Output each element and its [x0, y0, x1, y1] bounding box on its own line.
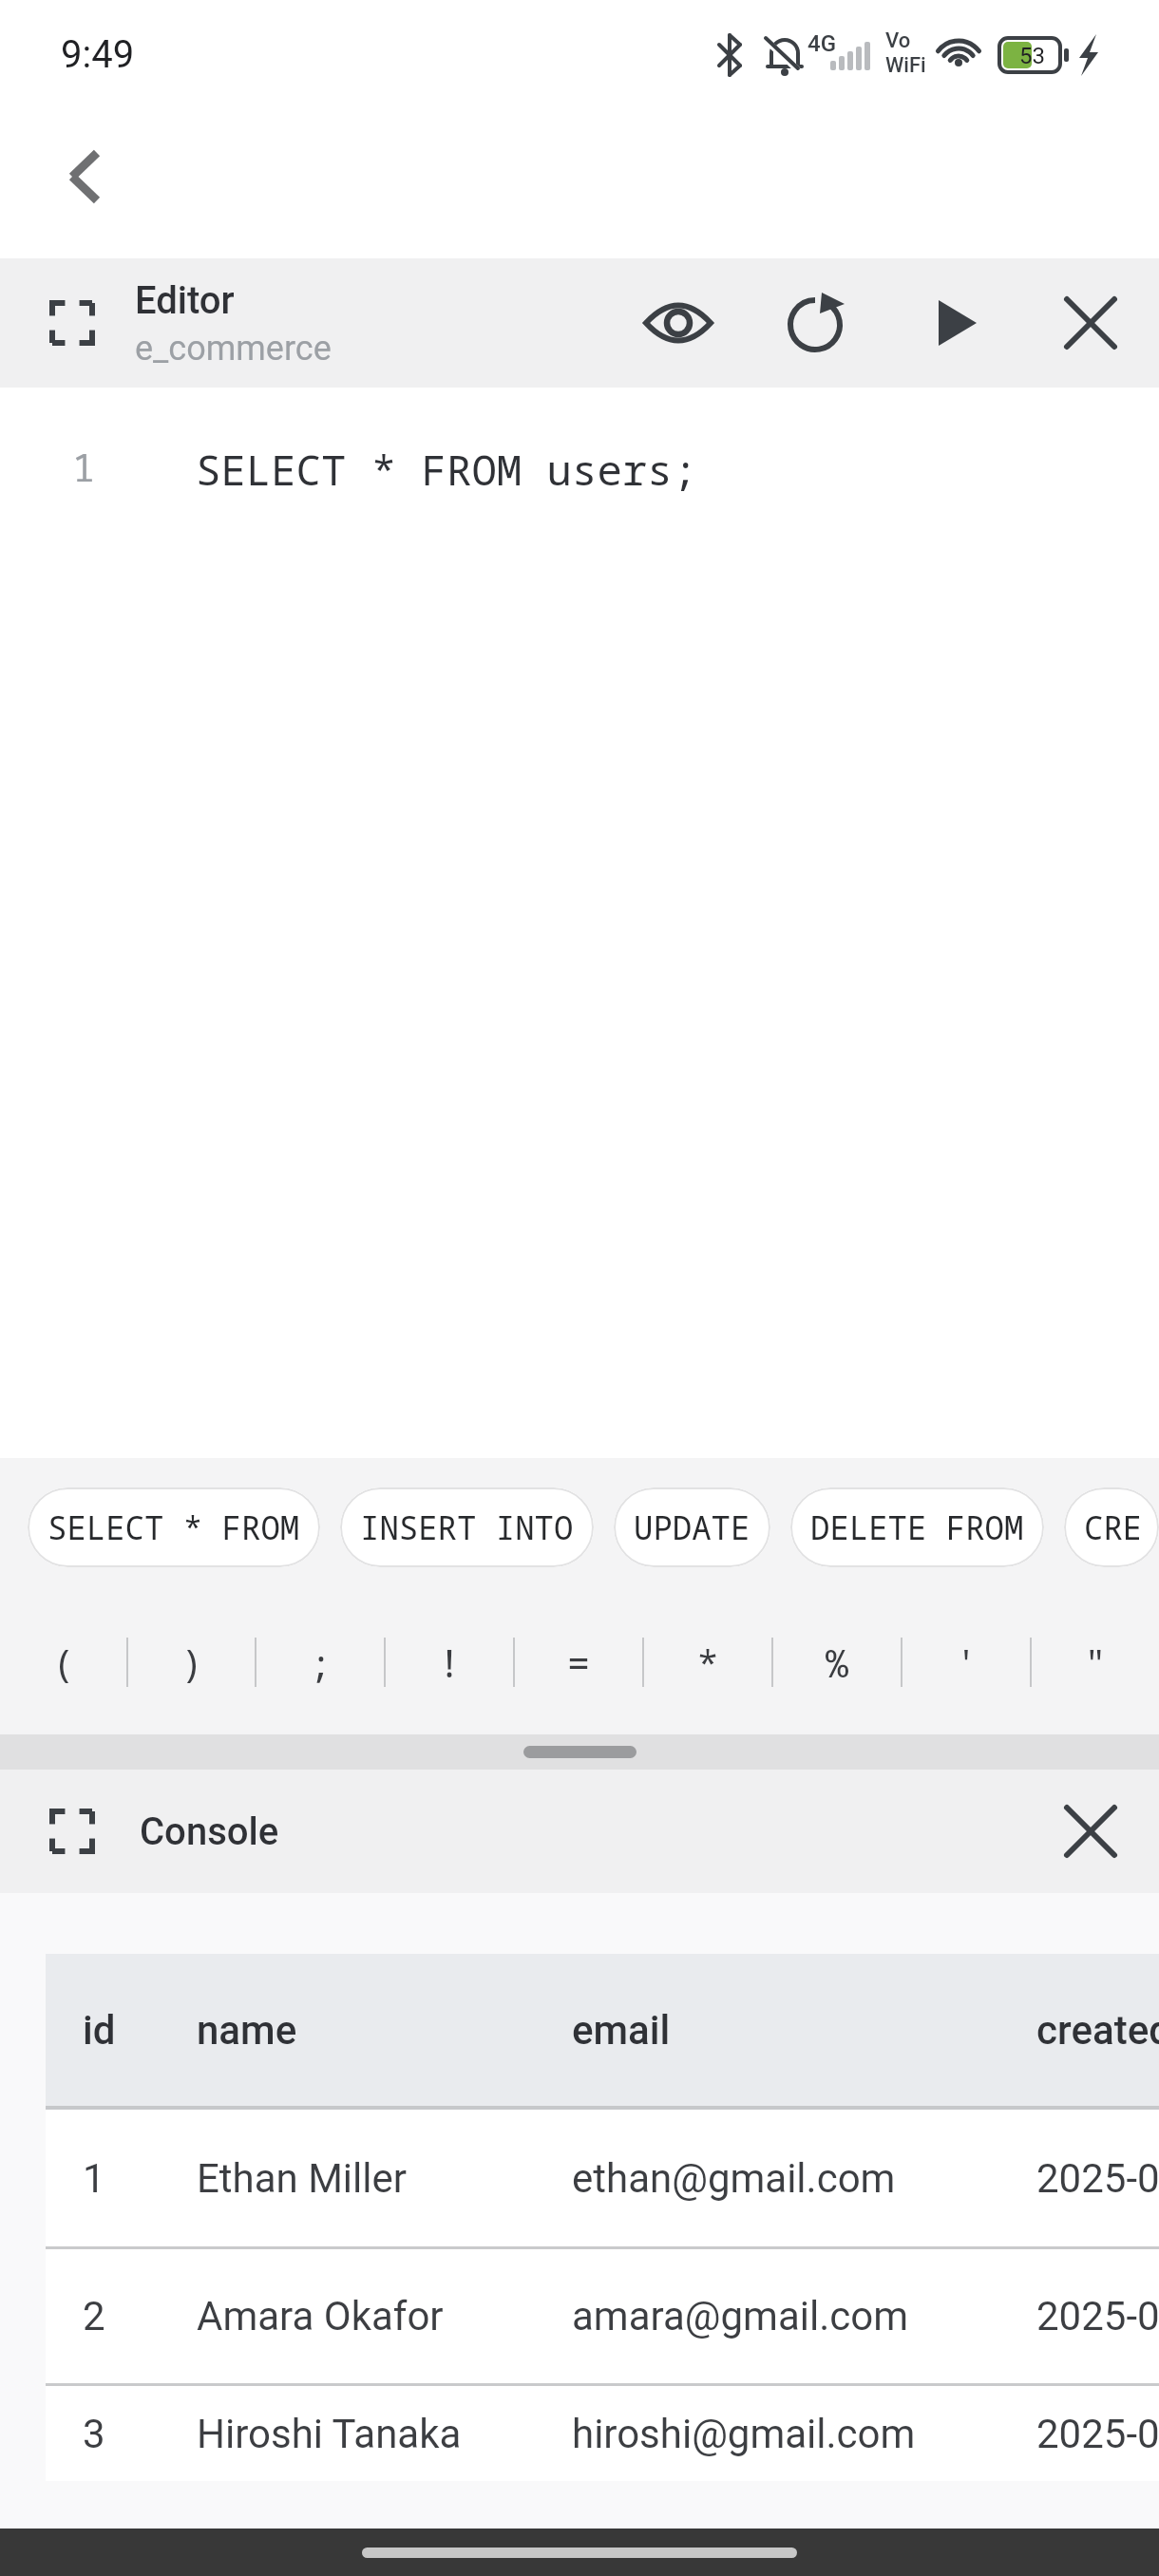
staticText: ethan@gmail.com: [572, 2155, 896, 2202]
staticText: Amara Okafor: [197, 2293, 444, 2339]
button[interactable]: ': [902, 1624, 1030, 1700]
staticText: ): [180, 1637, 203, 1688]
staticText: 2: [83, 2293, 105, 2339]
staticText: ': [955, 1637, 978, 1688]
button[interactable]: [912, 281, 996, 365]
staticText: ;: [309, 1637, 332, 1688]
staticText: Hiroshi Tanaka: [197, 2411, 462, 2457]
button[interactable]: [38, 1797, 106, 1866]
button[interactable]: [636, 281, 720, 365]
button[interactable]: [1049, 281, 1132, 365]
button[interactable]: [1049, 1790, 1132, 1873]
staticText: 1: [83, 2155, 105, 2202]
button[interactable]: [44, 129, 116, 201]
button[interactable]: DELETE FROM: [790, 1487, 1044, 1567]
button[interactable]: (: [0, 1624, 126, 1700]
staticText: name: [197, 2007, 297, 2054]
staticText: 9:49: [61, 32, 135, 77]
button[interactable]: *: [644, 1624, 771, 1700]
button[interactable]: =: [515, 1624, 642, 1700]
staticText: INSERT INTO: [360, 1506, 574, 1549]
staticText: %: [826, 1637, 848, 1688]
staticText: SELECT * FROM users;: [196, 441, 697, 498]
staticText: *: [696, 1637, 719, 1688]
button[interactable]: ;: [256, 1624, 384, 1700]
button[interactable]: [38, 289, 106, 357]
staticText: 2025-01-12: [1036, 2411, 1159, 2457]
button[interactable]: 1: [46, 2110, 1159, 2246]
button[interactable]: INSERT INTO: [340, 1487, 594, 1567]
button[interactable]: UPDATE: [614, 1487, 770, 1567]
staticText: WiFi: [885, 53, 926, 78]
staticText: ": [1084, 1637, 1107, 1688]
staticText: created_at: [1036, 2007, 1159, 2054]
staticText: DELETE FROM: [810, 1506, 1024, 1549]
staticText: email: [572, 2007, 671, 2054]
staticText: Console: [140, 1809, 279, 1854]
staticText: (: [52, 1637, 75, 1688]
staticText: 53: [1019, 43, 1045, 69]
staticText: =: [567, 1637, 590, 1688]
button[interactable]: SELECT * FROM: [28, 1487, 320, 1567]
button[interactable]: CREATE TABLE: [1064, 1487, 1159, 1567]
staticText: 2025-01-11: [1036, 2293, 1159, 2339]
staticText: id: [83, 2007, 116, 2054]
staticText: CREATE TABLE: [1084, 1506, 1139, 1549]
staticText: e_commerce: [135, 329, 332, 369]
staticText: 1: [72, 441, 95, 492]
staticText: Ethan Miller: [197, 2155, 408, 2202]
staticText: 3: [83, 2411, 105, 2457]
staticText: hiroshi@gmail.com: [572, 2411, 916, 2457]
staticText: Editor: [135, 278, 235, 323]
staticText: SELECT * FROM: [47, 1506, 300, 1549]
button[interactable]: 2: [46, 2249, 1159, 2383]
button[interactable]: [773, 281, 857, 365]
button[interactable]: ): [128, 1624, 255, 1700]
button[interactable]: 3: [46, 2386, 1159, 2481]
staticText: UPDATE: [634, 1506, 750, 1549]
button[interactable]: ": [1032, 1624, 1159, 1700]
staticText: 4G: [807, 30, 836, 57]
button[interactable]: %: [773, 1624, 901, 1700]
button[interactable]: !: [386, 1624, 513, 1700]
staticText: Vo: [885, 28, 911, 53]
staticText: amara@gmail.com: [572, 2293, 909, 2339]
staticText: 2025-01-10: [1036, 2155, 1159, 2202]
staticText: !: [438, 1637, 461, 1688]
